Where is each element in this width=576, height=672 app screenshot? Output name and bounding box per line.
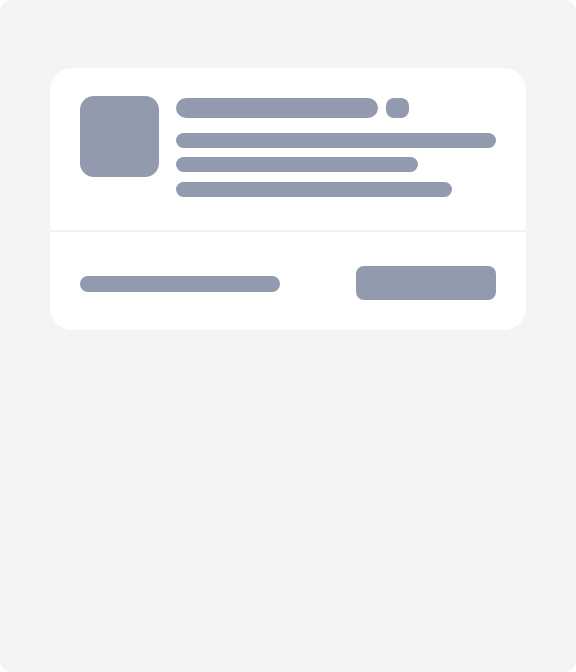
button[interactable]: Loading image xyxy=(50,68,526,330)
button[interactable]: Loading action button xyxy=(356,266,496,300)
other: Loading image xyxy=(80,96,159,177)
